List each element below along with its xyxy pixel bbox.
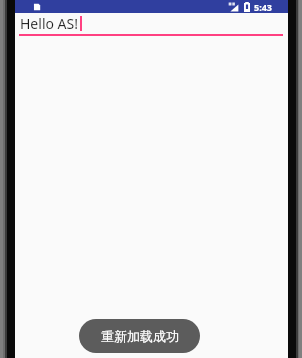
button[interactable]: 重新加载成功	[79, 319, 200, 353]
staticText: 重新加载成功	[101, 328, 179, 344]
button[interactable]: Hello AS!	[15, 13, 288, 36]
staticText: 5:43	[254, 1, 272, 13]
staticText: Hello AS!	[20, 14, 79, 33]
